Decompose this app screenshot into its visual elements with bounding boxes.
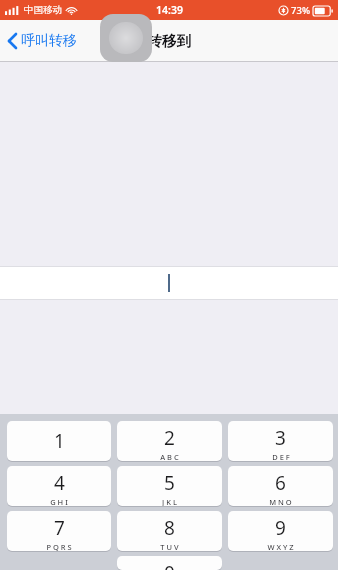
button[interactable]: 8 [117,511,222,551]
staticText: 转移到 [147,32,191,50]
staticText: 中国移动 [24,4,62,16]
button[interactable]: 9 [228,511,333,551]
staticText: 呼叫转移 [21,32,77,50]
staticText: 0 [164,560,175,570]
staticText: T U V [160,542,179,551]
button[interactable]: 5 [117,466,222,506]
staticText: 14:39 [156,3,183,17]
staticText: 1 [54,428,65,454]
staticText: P Q R S [46,542,72,551]
button[interactable]: 0 [117,556,222,570]
staticText: 8 [164,515,175,541]
button[interactable] [0,266,338,300]
button[interactable]: 呼叫转移 [0,26,87,56]
button[interactable]: 4 [7,466,111,506]
staticText: 6 [275,470,286,496]
staticText: 2 [164,425,175,451]
staticText: 4 [54,470,65,496]
staticText: 7 [54,515,65,541]
staticText: D E F [272,452,290,461]
button[interactable]: 3 [228,421,333,461]
button[interactable]: 1 [7,421,111,461]
staticText: M N O [269,497,292,506]
staticText: 3 [275,425,286,451]
staticText: J K L [162,497,177,506]
button[interactable]: 6 [228,466,333,506]
button[interactable]: 2 [117,421,222,461]
staticText: A B C [160,452,179,461]
staticText: 73% [291,4,310,17]
staticText: W X Y Z [267,542,294,551]
staticText: G H I [50,497,68,506]
button[interactable]: 7 [7,511,111,551]
staticText: 5 [164,470,175,496]
button[interactable]: Assistive touch [100,14,152,62]
staticText: 9 [275,515,286,541]
